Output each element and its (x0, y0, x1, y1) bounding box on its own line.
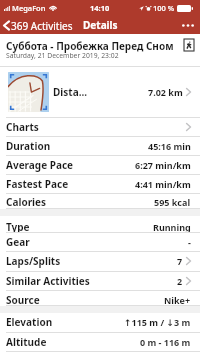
button[interactable]: Dista... (0, 67, 200, 118)
staticText: Source (6, 293, 40, 307)
button[interactable]: Elevation (0, 313, 200, 333)
button[interactable]: Calories (0, 194, 200, 209)
button[interactable]: Similar Activities (0, 272, 200, 291)
staticText: 100 % (153, 3, 175, 13)
button[interactable]: 369 Activities (0, 16, 77, 34)
staticText: Average Pace (6, 158, 74, 172)
button[interactable]: Average Pace (0, 156, 200, 175)
staticText: Calories (6, 195, 47, 209)
staticText: 369 Activities (11, 19, 73, 31)
staticText: Dista... (53, 85, 88, 99)
staticText: 0 m - 116 m (140, 336, 191, 348)
staticText: Details (83, 18, 118, 32)
button[interactable]: Altitude (0, 333, 200, 352)
staticText: 6:27 min/km (135, 159, 191, 171)
staticText: 595 kcal (154, 196, 191, 208)
staticText: ↑115 m / ↓3 m (124, 316, 191, 328)
staticText: Altitude (6, 335, 47, 349)
staticText: Gear (6, 235, 30, 249)
staticText: Charts (6, 120, 39, 134)
button[interactable]: Charts (0, 118, 200, 137)
staticText: 4:41 min/km (135, 178, 191, 190)
staticText: Saturday, 21 December 2019, 23:02 (6, 51, 119, 60)
staticText: Nike+ (164, 294, 191, 306)
staticText: 45:16 min (148, 140, 191, 152)
staticText: Fastest Pace (6, 177, 69, 191)
staticText: 7.02 km (148, 86, 183, 98)
staticText: Type (6, 220, 30, 234)
staticText: Elevation (6, 315, 53, 329)
staticText: Running (153, 221, 191, 233)
staticText: 14:10 (90, 3, 110, 13)
button[interactable]: Fastest Pace (0, 175, 200, 194)
button[interactable]: More options (176, 20, 200, 31)
staticText: Laps/Splits (6, 254, 61, 268)
staticText: Суббота - Пробежка Перед Сном (6, 39, 174, 53)
staticText: Duration (6, 139, 51, 153)
staticText: 7 (177, 255, 183, 267)
staticText: - (188, 236, 191, 248)
staticText: 2 (177, 275, 183, 287)
button[interactable]: Duration (0, 137, 200, 156)
button[interactable]: Type (0, 216, 200, 233)
staticText: MegaFon (12, 3, 46, 13)
button[interactable]: Gear (0, 233, 200, 252)
staticText: Similar Activities (6, 274, 90, 288)
button[interactable]: Source (0, 291, 200, 306)
button[interactable]: Laps/Splits (0, 252, 200, 272)
